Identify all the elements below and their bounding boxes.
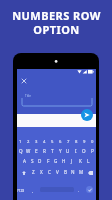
staticText: NUMBERS ROW [12,8,101,23]
button[interactable]: 2 [24,138,32,146]
button[interactable]: Shift [20,169,28,177]
staticText: ?123 [17,188,25,193]
button[interactable]: T [48,147,56,155]
button[interactable]: N [69,168,77,176]
button[interactable]: 7 [64,138,72,146]
button[interactable]: W [24,147,32,155]
button[interactable]: G [52,157,60,165]
staticText: 7 [67,139,70,145]
staticText: M [79,169,84,175]
staticText: 4 [43,139,46,145]
staticText: E [35,148,38,154]
button[interactable]: H [60,157,68,165]
staticText: F [47,158,50,164]
staticText: 3 [35,139,38,145]
staticText: R [43,148,46,154]
staticText: , [32,188,34,193]
staticText: Q [19,148,23,154]
staticText: H [62,158,66,164]
staticText: 5 [51,139,54,145]
button[interactable]: 0 [88,138,96,146]
staticText: T [51,148,54,154]
button[interactable]: Enter [86,186,93,193]
staticText: J [71,158,73,164]
button[interactable]: F [44,157,52,165]
staticText: G [54,158,58,164]
button[interactable]: P [88,147,96,155]
staticText: U [66,148,70,154]
button[interactable]: ?123 [16,186,26,195]
staticText: C [48,169,51,175]
button[interactable]: Z [30,168,37,176]
button[interactable]: 9 [80,138,88,146]
staticText: O [82,148,86,154]
button[interactable]: 3 [32,138,40,146]
button[interactable]: Close [19,76,28,85]
staticText: S [31,158,34,164]
staticText: P [91,148,94,154]
staticText: L [87,158,90,164]
staticText: K [79,158,82,164]
staticText: 8 [75,139,78,145]
staticText: I [75,148,77,154]
button[interactable]: E [32,147,40,155]
staticText: 0 [91,139,94,145]
button[interactable]: Title field [22,98,92,106]
staticText: B [64,169,67,175]
button[interactable]: 5 [48,138,56,146]
button[interactable]: R [40,147,48,155]
button[interactable]: L [84,157,92,165]
button[interactable]: B [61,168,69,176]
button[interactable]: D [36,157,44,165]
staticText: V [56,169,59,175]
button[interactable]: O [80,147,88,155]
button[interactable]: I [72,147,80,155]
staticText: W [26,148,31,154]
button[interactable]: Q [17,147,24,155]
staticText: 6 [59,139,62,145]
button[interactable]: Y [56,147,64,155]
button[interactable]: M [77,168,85,176]
button[interactable]: 1 [17,138,24,146]
button[interactable]: . [75,186,82,195]
staticText: 2 [27,139,30,145]
button[interactable]: X [37,168,45,176]
staticText: D [38,158,42,164]
button[interactable]: J [68,157,76,165]
button[interactable]: S [28,157,36,165]
staticText: 9 [83,139,86,145]
staticText: . [78,188,80,193]
staticText: A [23,158,26,164]
button[interactable]: V [53,168,61,176]
button[interactable]: , [29,186,36,195]
staticText: Y [59,148,62,154]
staticText: N [71,169,75,175]
button[interactable]: C [45,168,53,176]
staticText: X [40,169,43,175]
button[interactable]: Backspace [86,169,94,177]
staticText: OPTION [33,22,80,37]
staticText: Z [32,169,35,175]
staticText: 1 [19,139,22,145]
button[interactable]: A [21,157,28,165]
staticText: Title [25,94,31,98]
button[interactable]: U [64,147,72,155]
button[interactable]: 8 [72,138,80,146]
button[interactable]: K [76,157,84,165]
button[interactable]: Send [81,109,93,121]
button[interactable]: 6 [56,138,64,146]
button[interactable]: 4 [40,138,48,146]
